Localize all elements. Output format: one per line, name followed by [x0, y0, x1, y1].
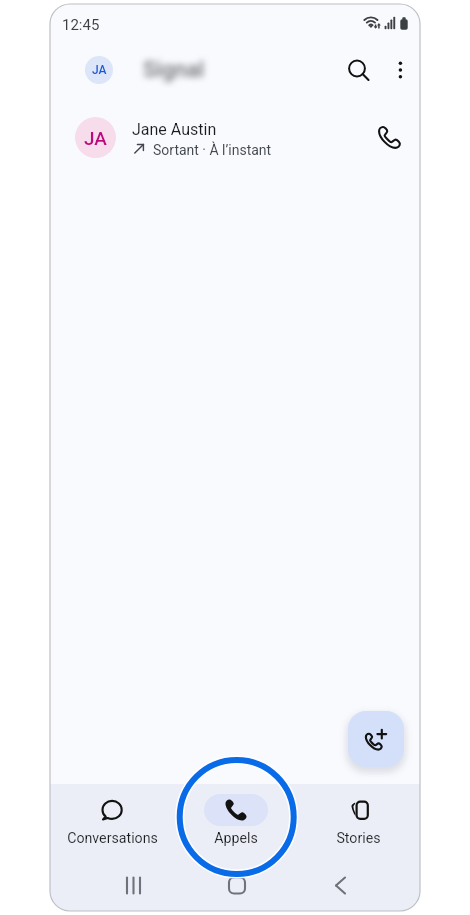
- staticText: Sortant · À l’instant: [153, 142, 272, 158]
- staticText: JA: [84, 127, 107, 149]
- button[interactable]: New call: [348, 711, 404, 767]
- staticText: Jane Austin: [132, 120, 217, 139]
- button[interactable]: Call: [368, 116, 408, 156]
- button[interactable]: Appels: [174, 784, 297, 847]
- button[interactable]: More options: [380, 51, 420, 91]
- button[interactable]: Profile: [85, 56, 113, 84]
- staticText: Appels: [214, 830, 258, 847]
- staticText: Stories: [336, 830, 381, 847]
- staticText: 12:45: [62, 16, 100, 34]
- staticText: Signal: [143, 57, 205, 83]
- button[interactable]: Conversations: [50, 784, 174, 847]
- staticText: JA: [92, 63, 107, 77]
- staticText: Conversations: [67, 830, 158, 847]
- button[interactable]: Search: [339, 51, 379, 91]
- button[interactable]: JA: [50, 109, 420, 173]
- button[interactable]: Stories: [297, 784, 420, 847]
